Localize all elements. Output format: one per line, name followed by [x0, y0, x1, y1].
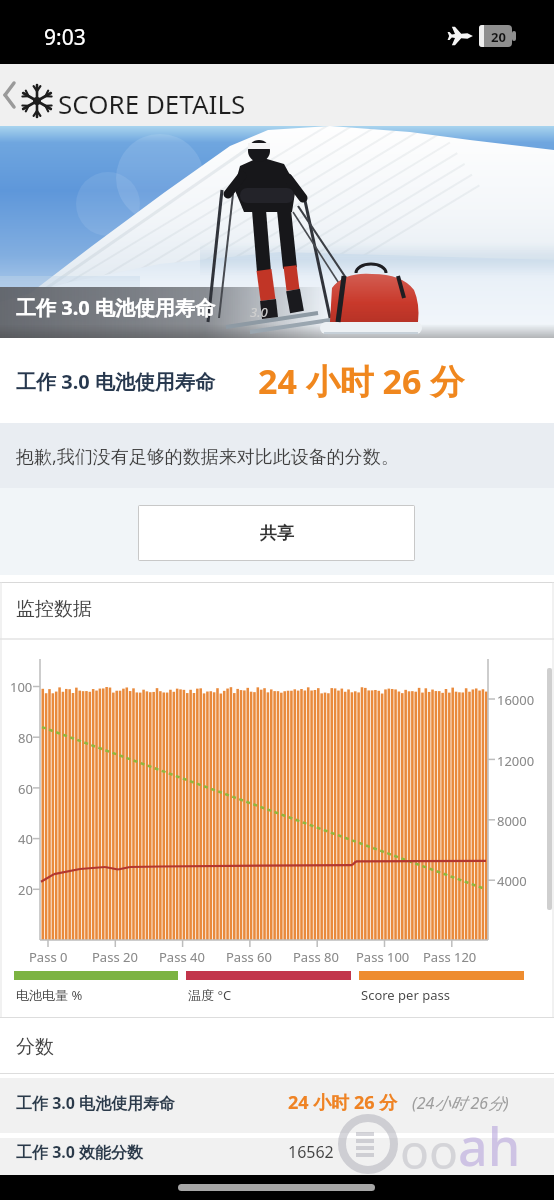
staticText: Pass 80	[293, 948, 339, 966]
button[interactable]	[0, 64, 60, 126]
staticText: Pass 120	[423, 948, 477, 966]
staticText: 分数	[16, 1035, 54, 1059]
button[interactable]: 工作 3.0 电池使用寿命	[0, 1078, 554, 1133]
button[interactable]: 共享	[138, 505, 415, 561]
staticText: 8000	[497, 812, 527, 830]
staticText: 12000	[497, 752, 535, 770]
staticText: Pass 60	[226, 948, 272, 966]
button[interactable]: 工作 3.0 效能分数	[0, 1138, 554, 1175]
staticText: 电池电量 %	[16, 986, 83, 1004]
staticText: ah	[458, 1110, 521, 1181]
staticText: 40	[18, 830, 33, 848]
staticText: 抱歉,我们没有足够的数据来对比此设备的分数。	[16, 444, 399, 469]
staticText: 80	[18, 729, 33, 747]
staticText: 100	[10, 678, 33, 696]
staticText: 24 小时 26 分	[288, 1090, 398, 1115]
staticText: 工作 3.0 电池使用寿命	[16, 368, 215, 395]
staticText: 3.0	[250, 303, 268, 321]
staticText: 16000	[497, 691, 535, 709]
staticText: 24 小时 26 分	[258, 358, 465, 404]
staticText: 16562	[288, 1141, 334, 1163]
staticText: 20	[18, 881, 33, 899]
staticText: 60	[18, 780, 33, 798]
staticText: 4000	[497, 872, 527, 890]
staticText: Pass 0	[29, 948, 68, 966]
staticText: 9:03	[44, 23, 86, 52]
staticText: Pass 40	[159, 948, 205, 966]
staticText: oo	[400, 1118, 459, 1183]
staticText: 工作 3.0 效能分数	[16, 1141, 144, 1163]
staticText: (24小时 26分)	[412, 1092, 509, 1114]
staticText: 温度 °C	[188, 986, 232, 1004]
staticText: Score per pass	[361, 986, 450, 1004]
staticText: 20	[491, 28, 506, 46]
staticText: 共享	[260, 523, 294, 544]
staticText: 监控数据	[16, 597, 92, 621]
staticText: 工作 3.0 电池使用寿命	[16, 294, 215, 321]
staticText: Pass 100	[356, 948, 410, 966]
staticText: Pass 20	[92, 948, 138, 966]
staticText: SCORE DETAILS	[58, 86, 246, 121]
staticText: 工作 3.0 电池使用寿命	[16, 1092, 176, 1114]
